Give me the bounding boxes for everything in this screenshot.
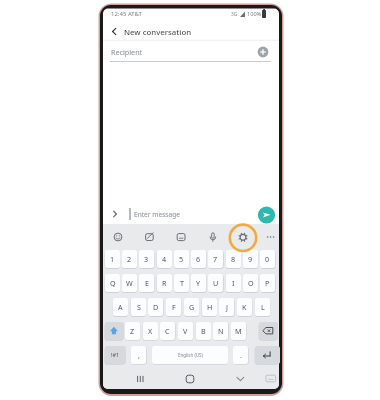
button[interactable]: F: [166, 298, 181, 316]
button[interactable]: 1: [105, 250, 120, 268]
button[interactable]: 0: [260, 250, 275, 268]
staticText: J: [226, 302, 228, 312]
staticText: 5: [179, 254, 184, 264]
button[interactable]: 4: [157, 250, 172, 268]
staticText: N: [218, 326, 224, 336]
staticText: 8: [231, 254, 236, 264]
staticText: Q: [110, 278, 116, 288]
staticText: E: [145, 278, 149, 288]
button[interactable]: [205, 229, 220, 245]
button[interactable]: T: [174, 274, 189, 292]
staticText: 100%: [247, 10, 262, 18]
button[interactable]: X: [143, 322, 158, 340]
staticText: V: [183, 326, 188, 336]
button[interactable]: Q: [105, 274, 120, 292]
staticText: R: [162, 278, 167, 288]
button[interactable]: A: [113, 298, 128, 316]
button[interactable]: G: [184, 298, 199, 316]
staticText: 3: [144, 254, 149, 264]
staticText: 0: [265, 254, 270, 264]
staticText: K: [242, 302, 247, 312]
button[interactable]: L: [255, 298, 270, 316]
button[interactable]: [257, 206, 276, 224]
button[interactable]: [152, 346, 228, 364]
staticText: C: [165, 326, 170, 336]
button[interactable]: [259, 322, 278, 340]
staticText: Y: [196, 278, 201, 288]
button[interactable]: 2: [122, 250, 137, 268]
button[interactable]: I: [226, 274, 241, 292]
staticText: 9: [248, 254, 253, 264]
button[interactable]: 6: [191, 250, 206, 268]
button[interactable]: Y: [191, 274, 206, 292]
staticText: B: [201, 326, 206, 336]
button[interactable]: J: [219, 298, 234, 316]
button[interactable]: D: [148, 298, 163, 316]
staticText: 4: [162, 254, 167, 264]
button[interactable]: !#1: [105, 346, 126, 364]
button[interactable]: K: [237, 298, 252, 316]
staticText: Enter message: [134, 210, 180, 219]
button[interactable]: [173, 229, 188, 245]
staticText: F: [172, 302, 176, 312]
button[interactable]: P: [260, 274, 275, 292]
button[interactable]: .: [233, 346, 248, 364]
button[interactable]: 7: [208, 250, 223, 268]
staticText: X: [148, 326, 153, 336]
button[interactable]: Z: [125, 322, 140, 340]
button[interactable]: 9: [243, 250, 258, 268]
button[interactable]: [255, 44, 271, 60]
button[interactable]: U: [208, 274, 223, 292]
staticText: O: [248, 278, 254, 288]
staticText: 3G: [231, 11, 238, 18]
button[interactable]: [235, 229, 251, 245]
button[interactable]: 5: [174, 250, 189, 268]
button[interactable]: C: [160, 322, 175, 340]
staticText: English (US): [178, 352, 203, 358]
staticText: 6: [196, 254, 201, 264]
staticText: G: [189, 302, 195, 312]
button[interactable]: [263, 229, 278, 245]
button[interactable]: M: [231, 322, 246, 340]
button[interactable]: [255, 346, 280, 364]
staticText: .: [240, 350, 242, 360]
button[interactable]: [131, 370, 146, 385]
staticText: P: [265, 278, 270, 288]
staticText: D: [153, 302, 159, 312]
button[interactable]: ,: [131, 346, 146, 364]
staticText: H: [207, 302, 213, 312]
staticText: M: [235, 326, 242, 336]
staticText: ,: [138, 350, 140, 360]
staticText: T: [180, 278, 184, 288]
button[interactable]: W: [122, 274, 137, 292]
button[interactable]: E: [139, 274, 154, 292]
staticText: A: [118, 302, 123, 312]
button[interactable]: [233, 370, 248, 385]
button[interactable]: [141, 229, 156, 245]
button[interactable]: [108, 24, 120, 39]
button[interactable]: O: [243, 274, 258, 292]
staticText: W: [126, 278, 133, 288]
staticText: L: [261, 302, 265, 312]
button[interactable]: [182, 370, 198, 385]
staticText: Z: [130, 326, 135, 336]
button[interactable]: H: [202, 298, 217, 316]
button[interactable]: [105, 322, 124, 340]
button[interactable]: V: [178, 322, 193, 340]
staticText: U: [213, 278, 219, 288]
staticText: 2: [127, 254, 132, 264]
button[interactable]: [110, 229, 125, 245]
staticText: S: [137, 302, 141, 312]
button[interactable]: R: [157, 274, 172, 292]
button[interactable]: S: [131, 298, 146, 316]
staticText: !#1: [111, 351, 120, 359]
staticText: I: [232, 278, 235, 288]
staticText: 7: [213, 254, 218, 264]
staticText: New conversation: [124, 27, 192, 38]
button[interactable]: 8: [226, 250, 241, 268]
staticText: Recipient: [111, 47, 143, 57]
button[interactable]: N: [213, 322, 228, 340]
staticText: 1: [110, 254, 115, 264]
button[interactable]: 3: [139, 250, 154, 268]
button[interactable]: B: [196, 322, 211, 340]
